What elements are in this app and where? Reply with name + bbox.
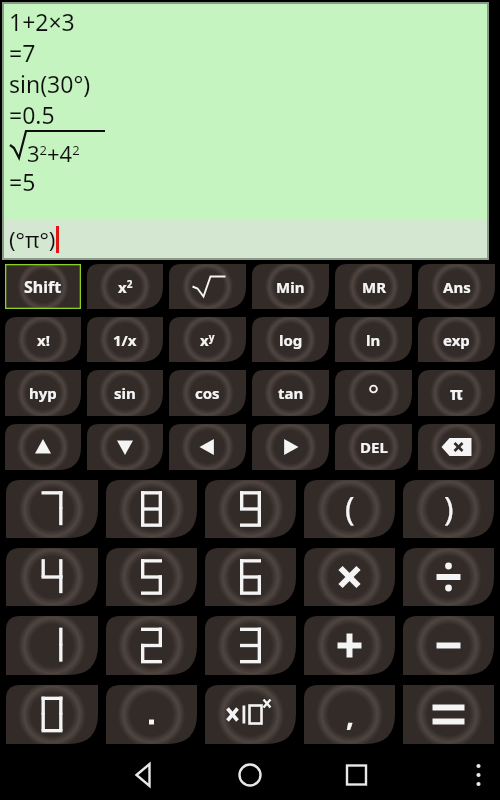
button[interactable]: DEL [335, 424, 412, 470]
staticText: π [450, 382, 463, 405]
staticText: (°π°) [9, 224, 56, 254]
button[interactable]: ln [335, 317, 412, 362]
button[interactable]: Back [110, 750, 170, 800]
button[interactable]: Up [5, 424, 81, 470]
button[interactable]: Square root [169, 264, 246, 309]
staticText: =7 [9, 37, 36, 68]
staticText: , [346, 696, 354, 734]
staticText: x! [37, 330, 50, 350]
staticText: exp [443, 330, 470, 350]
staticText: =5 [9, 166, 36, 197]
staticText: hyp [29, 383, 57, 403]
button[interactable]: x to the 2 [87, 264, 163, 309]
staticText: 1+2×3 [9, 6, 75, 37]
button[interactable]: Digit 2 [106, 616, 197, 675]
button[interactable]: Multiply [304, 548, 395, 606]
button[interactable]: π [418, 370, 495, 416]
button[interactable]: hyp [5, 370, 81, 416]
button[interactable]: Plus [304, 616, 395, 675]
button[interactable]: sin [87, 370, 163, 416]
staticText: 32+42 [27, 138, 80, 166]
staticText: =0.5 [9, 99, 55, 130]
staticText: Shift [24, 276, 62, 298]
button[interactable]: Recents [358, 750, 418, 800]
button[interactable]: Ans [418, 264, 495, 309]
button[interactable]: x! [5, 317, 81, 362]
button[interactable]: Close parenthesis [403, 480, 494, 538]
button[interactable]: Decimal point [106, 685, 197, 744]
staticText: ln [366, 330, 381, 350]
button[interactable]: Equals [403, 685, 494, 744]
button[interactable]: Home [220, 750, 280, 800]
button[interactable]: 1/x [87, 317, 163, 362]
button[interactable]: Left [169, 424, 246, 470]
button[interactable]: cos [169, 370, 246, 416]
staticText: sin [114, 383, 136, 403]
button[interactable]: More options [464, 750, 500, 800]
button[interactable]: Digit 0 [6, 685, 98, 744]
button[interactable]: Comma [304, 685, 395, 744]
staticText: xy [200, 330, 215, 350]
staticText: cos [195, 383, 220, 403]
staticText: 1/x [113, 330, 137, 350]
staticText: x2 [118, 277, 133, 297]
button[interactable]: Digit 5 [106, 548, 197, 606]
staticText: sin(30°) [9, 68, 91, 99]
staticText: ( [345, 487, 355, 531]
button[interactable]: Backspace [418, 424, 495, 470]
staticText: log [279, 330, 303, 350]
staticText: Ans [443, 277, 471, 297]
staticText: ) [444, 487, 454, 531]
button[interactable]: Down [87, 424, 163, 470]
button[interactable]: Digit 4 [6, 548, 98, 606]
button[interactable]: x to the y [169, 317, 246, 362]
button[interactable]: log [252, 317, 329, 362]
button[interactable]: Shift [5, 264, 81, 309]
staticText: tan [278, 383, 304, 403]
staticText: Min [276, 277, 305, 297]
button[interactable]: Digit 3 [205, 616, 296, 675]
button[interactable]: Min [252, 264, 329, 309]
button[interactable]: Divide [403, 548, 494, 606]
button[interactable]: exp [418, 317, 495, 362]
button[interactable]: Minus [403, 616, 494, 675]
staticText: MR [362, 277, 386, 297]
button[interactable]: Open parenthesis [304, 480, 395, 538]
button[interactable]: Digit 9 [205, 480, 296, 538]
button[interactable]: Times ten to the power [205, 685, 296, 744]
button[interactable]: Degree [335, 370, 412, 416]
button[interactable]: Digit 1 [6, 616, 98, 675]
button[interactable]: Digit 8 [106, 480, 197, 538]
button[interactable]: Right [252, 424, 329, 470]
button[interactable]: tan [252, 370, 329, 416]
button[interactable]: Digit 6 [205, 548, 296, 606]
button[interactable]: Digit 7 [6, 480, 98, 538]
staticText: DEL [360, 437, 388, 457]
button[interactable]: MR [335, 264, 412, 309]
